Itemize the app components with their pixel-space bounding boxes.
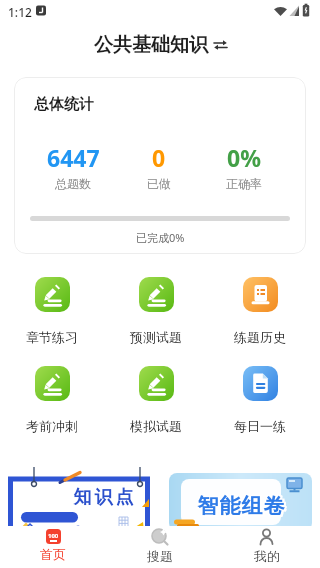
staticText: 已做 (147, 176, 171, 191)
button[interactable]: 100 (0, 526, 106, 568)
staticText: 考前冲刺 (26, 418, 78, 434)
button[interactable]: 考前冲刺 (0, 366, 104, 434)
staticText: 模拟试题 (130, 418, 182, 434)
staticText: 已完成0% (136, 230, 185, 245)
staticText: 正确率 (226, 176, 262, 191)
button[interactable]: 公共基础知识 (94, 33, 227, 57)
button[interactable]: 章节练习 (0, 277, 104, 345)
button[interactable]: 搜题 (106, 526, 213, 568)
button[interactable]: 每日一练 (208, 366, 312, 434)
staticText: 智能组卷 (199, 493, 287, 519)
staticText: 公共基础知识 (94, 33, 208, 57)
button[interactable]: 知识点 (8, 461, 150, 531)
button[interactable]: 我的 (213, 526, 320, 568)
staticText: 知识点 (72, 486, 135, 509)
staticText: 智能组卷 (196, 492, 284, 518)
staticText: 智能组卷 (197, 492, 285, 518)
staticText: 6447 (47, 142, 100, 173)
staticText: 0 (152, 142, 166, 173)
staticText: 0% (227, 142, 261, 173)
staticText: 智能组卷 (196, 495, 284, 521)
button[interactable]: 练题历史 (208, 277, 312, 345)
staticText: 100 (48, 532, 59, 540)
staticText: 智能组卷 (199, 495, 287, 521)
button[interactable]: 预测试题 (104, 277, 208, 345)
staticText: 智能组卷 (199, 492, 287, 518)
staticText: 首页 (40, 546, 66, 562)
button[interactable]: 智能组卷 (169, 461, 312, 531)
button[interactable]: 模拟试题 (104, 366, 208, 434)
staticText: 智能组卷 (196, 493, 284, 519)
staticText: 章节练习 (26, 329, 78, 345)
staticText: 1:12 (8, 4, 32, 20)
staticText: 智能组卷 (197, 495, 285, 521)
staticText: 智能组卷 (197, 493, 285, 519)
staticText: 总题数 (55, 176, 91, 191)
staticText: 搜题 (147, 548, 173, 564)
staticText: 总体统计 (34, 95, 94, 114)
staticText: 预测试题 (130, 329, 182, 345)
staticText: 练题历史 (234, 329, 286, 345)
staticText: 每日一练 (234, 418, 286, 434)
staticText: 我的 (254, 548, 280, 564)
